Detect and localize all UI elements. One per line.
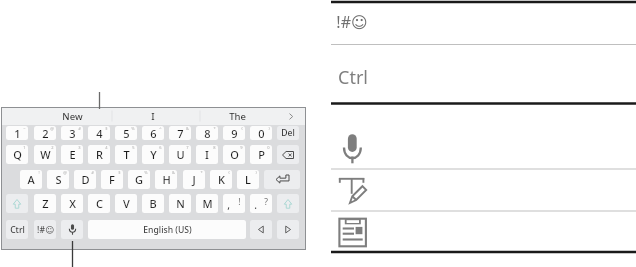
button[interactable]: W <box>34 145 56 164</box>
button[interactable]: E <box>61 145 83 164</box>
button[interactable]: Ctrl <box>338 62 408 92</box>
button[interactable]: 2 <box>34 126 56 140</box>
button[interactable]: R <box>88 145 110 164</box>
button[interactable]: Handwriting <box>336 176 370 206</box>
button[interactable]: 4 <box>88 126 110 140</box>
staticText: 8 <box>204 126 211 140</box>
staticText: 0 <box>267 145 270 150</box>
staticText: J <box>192 172 196 187</box>
staticText: I <box>151 110 155 123</box>
button[interactable]: I <box>113 107 193 125</box>
staticText: * <box>200 170 203 175</box>
button[interactable]: T <box>115 145 137 164</box>
staticText: D <box>81 172 90 187</box>
staticText: ? <box>264 196 268 208</box>
button[interactable]: , <box>223 194 245 213</box>
staticText: 7 <box>186 145 189 150</box>
button[interactable]: New <box>31 107 113 125</box>
staticText: $ <box>105 126 108 131</box>
staticText: !#☺ <box>336 11 368 33</box>
staticText: B <box>149 196 157 211</box>
button[interactable]: Z <box>34 194 56 213</box>
button[interactable]: A <box>20 170 42 189</box>
staticText: R <box>96 147 103 162</box>
button[interactable]: left <box>250 220 272 239</box>
staticText: New <box>62 110 83 123</box>
button[interactable]: V <box>115 194 137 213</box>
button[interactable]: K <box>210 170 232 189</box>
button[interactable]: Ctrl <box>6 220 28 239</box>
button[interactable]: 5 <box>115 126 137 140</box>
staticText: 7 <box>177 126 184 140</box>
button[interactable]: Y <box>142 145 164 164</box>
staticText: 6 <box>150 126 157 140</box>
button[interactable]: H <box>155 170 177 189</box>
button[interactable]: N <box>169 194 191 213</box>
button[interactable]: . <box>250 194 272 213</box>
button[interactable]: backspace <box>277 145 299 164</box>
button[interactable]: Q <box>6 145 28 164</box>
button[interactable]: J <box>183 170 205 189</box>
button[interactable]: I <box>196 145 218 164</box>
staticText: ^ <box>159 126 162 131</box>
staticText: # <box>78 126 81 131</box>
staticText: A <box>27 172 35 187</box>
button[interactable]: The <box>200 107 274 125</box>
staticText: 8 <box>213 145 216 150</box>
staticText: !#☺ <box>37 224 54 236</box>
button[interactable]: English (US) <box>88 220 246 239</box>
button[interactable]: 6 <box>142 126 164 140</box>
staticText: English (US) <box>143 224 192 236</box>
button[interactable]: X <box>61 194 83 213</box>
button[interactable]: G <box>128 170 150 189</box>
button[interactable]: Voice input <box>340 130 366 166</box>
button[interactable]: 8 <box>196 126 218 140</box>
button[interactable]: right <box>277 220 299 239</box>
staticText: 1 <box>23 145 26 150</box>
button[interactable]: 1 <box>6 126 28 140</box>
staticText: 5 <box>123 126 130 140</box>
button[interactable]: D <box>74 170 96 189</box>
staticText: 2 <box>42 126 49 140</box>
button[interactable]: 0 <box>250 126 272 140</box>
staticText: ) <box>268 126 270 131</box>
button[interactable]: !#☺ <box>34 220 56 239</box>
staticText: The <box>229 110 246 123</box>
button[interactable]: 7 <box>169 126 191 140</box>
staticText: @ <box>63 170 67 175</box>
button[interactable]: !#☺ <box>336 9 406 35</box>
staticText: T <box>123 147 130 162</box>
staticText: . <box>254 198 257 212</box>
button[interactable]: Clipboard <box>337 216 369 250</box>
button[interactable]: P <box>250 145 272 164</box>
button[interactable]: Del <box>277 126 299 140</box>
button[interactable]: More suggestions <box>276 107 306 125</box>
staticText: Z <box>42 196 49 211</box>
button[interactable]: C <box>88 194 110 213</box>
staticText: ( <box>241 126 243 131</box>
staticText: M <box>202 196 213 211</box>
staticText: P <box>258 147 265 162</box>
staticText: H <box>162 172 171 187</box>
button[interactable]: enter <box>264 170 300 189</box>
button[interactable]: O <box>223 145 245 164</box>
button[interactable]: M <box>196 194 218 213</box>
staticText: 1 <box>14 126 21 140</box>
button[interactable]: B <box>142 194 164 213</box>
staticText: S <box>55 172 62 187</box>
staticText: ~ <box>23 126 26 131</box>
button[interactable]: 9 <box>223 126 245 140</box>
button[interactable]: F <box>101 170 123 189</box>
button[interactable]: 3 <box>61 126 83 140</box>
button[interactable]: mic <box>61 220 83 239</box>
staticText: W <box>40 147 51 162</box>
staticText: & <box>186 126 189 131</box>
staticText: Ctrl <box>338 65 368 90</box>
staticText: ( <box>228 170 230 175</box>
button[interactable]: S <box>47 170 69 189</box>
staticText: K <box>218 172 225 187</box>
button[interactable]: shift <box>277 194 299 213</box>
button[interactable]: L <box>237 170 259 189</box>
button[interactable]: shift <box>6 194 28 213</box>
button[interactable]: U <box>169 145 191 164</box>
